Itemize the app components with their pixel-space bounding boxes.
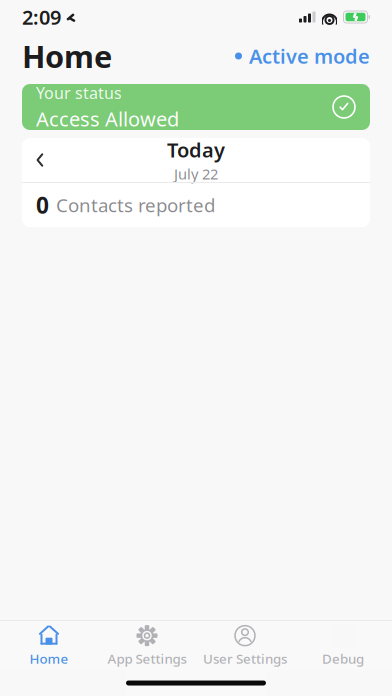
staticText: Debug <box>322 650 364 667</box>
staticText: Active mode <box>249 43 370 69</box>
staticText: Access Allowed <box>36 105 179 132</box>
staticText: 2:09 <box>22 4 61 30</box>
button[interactable]: Home <box>0 621 98 670</box>
staticText: Your status <box>36 82 122 103</box>
staticText: Home <box>22 36 112 76</box>
staticText: July 22 <box>174 164 218 183</box>
staticText: Contacts reported <box>56 193 215 217</box>
button[interactable]: Active mode <box>235 43 370 69</box>
button[interactable]: User Settings <box>196 621 294 670</box>
staticText: Home <box>29 650 68 667</box>
staticText: Today <box>167 136 225 163</box>
button[interactable]: Previous day <box>22 138 58 182</box>
staticText: User Settings <box>203 650 287 667</box>
staticText: 0 <box>36 190 49 220</box>
staticText: App Settings <box>107 650 186 667</box>
button[interactable]: Debug <box>294 621 392 670</box>
button[interactable]: App Settings <box>98 621 196 670</box>
